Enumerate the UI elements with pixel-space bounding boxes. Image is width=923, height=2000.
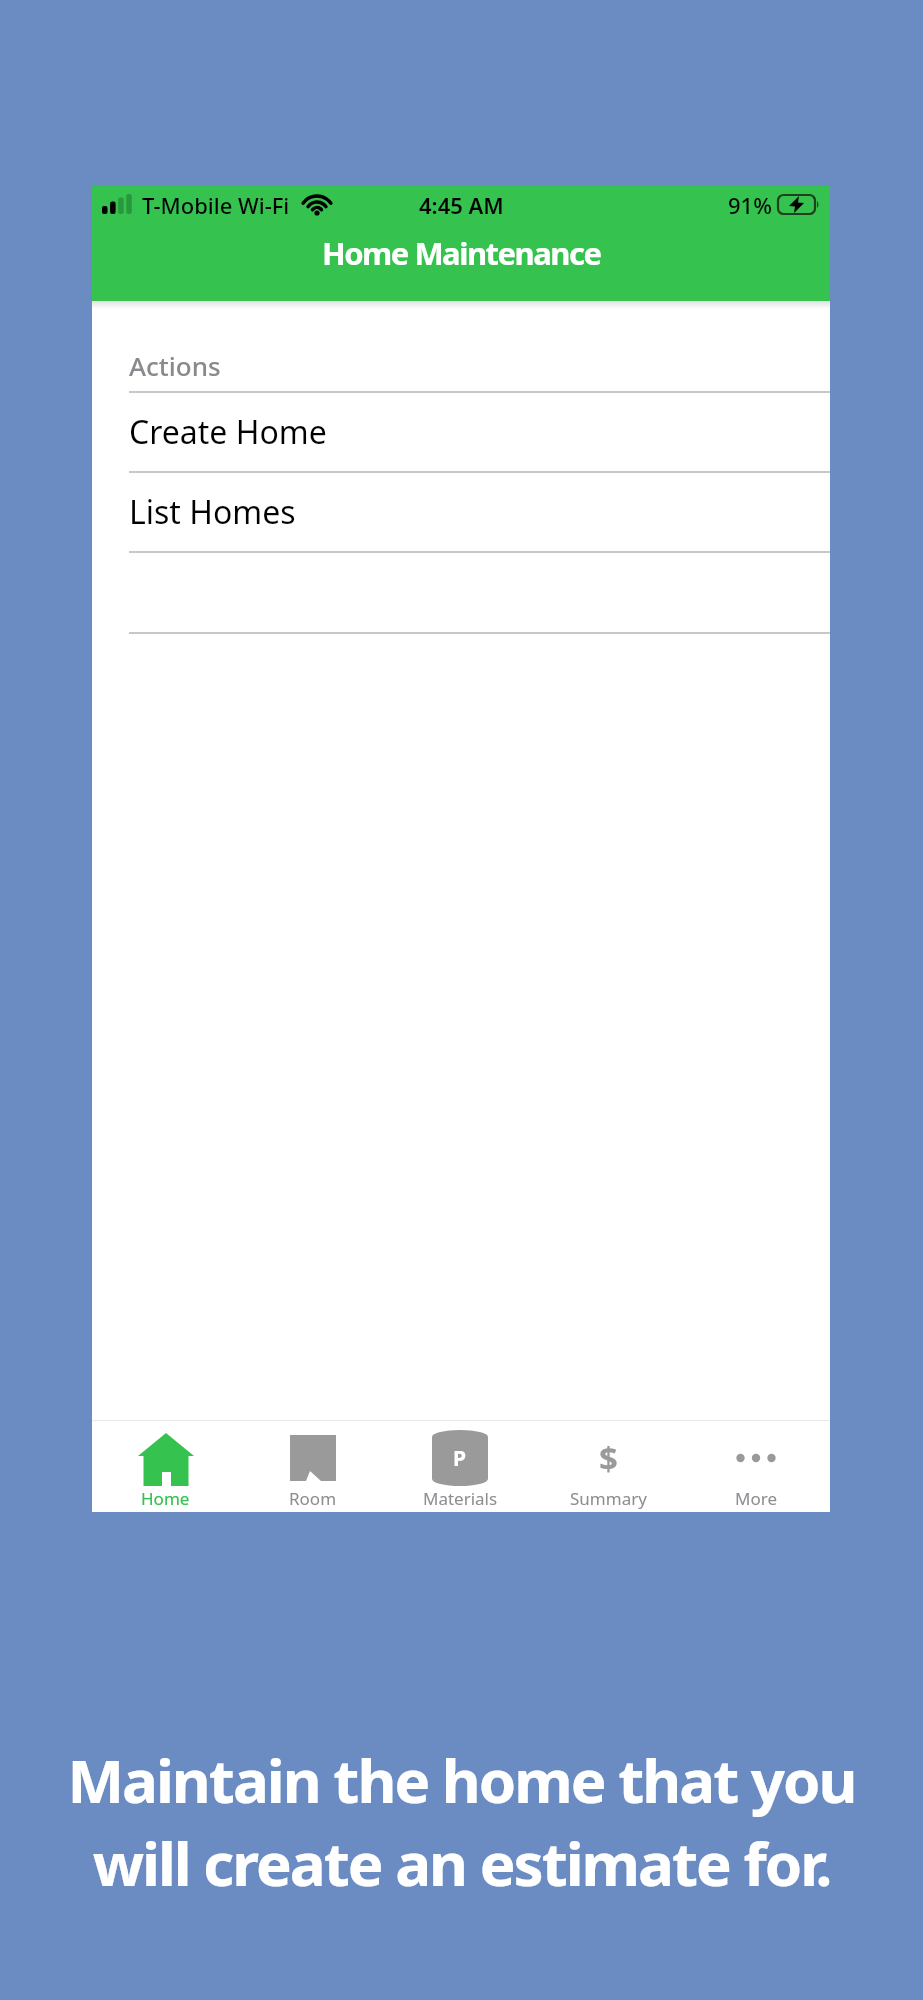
staticText: More (735, 1487, 777, 1510)
button[interactable]: Room (239, 1421, 386, 1512)
staticText: Create Home (129, 410, 327, 454)
staticText: T-Mobile Wi-Fi (142, 190, 290, 220)
staticText: Actions (129, 348, 221, 383)
staticText: 4:45 AM (419, 190, 504, 220)
button[interactable]: Home (92, 1421, 239, 1512)
staticText: Room (289, 1487, 337, 1510)
button[interactable]: $ (534, 1421, 682, 1512)
staticText: Maintain the home that you will create a… (67, 1739, 856, 1904)
staticText: Summary (570, 1487, 647, 1510)
staticText: Home Maintenance (322, 232, 601, 274)
staticText: Home (141, 1487, 190, 1510)
button[interactable]: More (682, 1421, 830, 1512)
button[interactable]: Create Home (92, 393, 830, 471)
staticText: 91% (728, 190, 772, 220)
staticText: $ (599, 1436, 618, 1481)
staticText: Materials (423, 1487, 498, 1510)
staticText: List Homes (129, 490, 296, 534)
button[interactable]: List Homes (92, 473, 830, 551)
staticText: P (453, 1444, 467, 1473)
button[interactable]: P (386, 1421, 534, 1512)
